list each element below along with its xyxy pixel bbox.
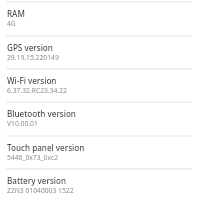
staticText: RAM	[7, 8, 25, 19]
button[interactable]: Wi-Fi version	[0, 68, 200, 101]
staticText: Wi-Fi version	[7, 75, 57, 86]
staticText: 29.19.15.220149	[7, 53, 59, 62]
button[interactable]: RAM	[0, 1, 200, 34]
staticText: 4G	[7, 19, 16, 28]
button[interactable]: Bluetooth version	[0, 101, 200, 134]
staticText: Touch panel version	[7, 142, 85, 153]
staticText: Z2N3 01040003 1522	[7, 186, 74, 195]
staticText: Battery version	[7, 175, 67, 186]
button[interactable]: Touch panel version	[0, 135, 200, 168]
staticText: Bluetooth version	[7, 108, 76, 119]
staticText: GPS version	[7, 42, 53, 53]
button[interactable]: GPS version	[0, 35, 200, 68]
button[interactable]: Battery version	[0, 168, 200, 200]
staticText: V10.00.01	[7, 119, 38, 128]
staticText: 6.37.32.RC23.34.22	[7, 86, 67, 95]
staticText: 5446_0x73_0xc2	[7, 153, 58, 162]
